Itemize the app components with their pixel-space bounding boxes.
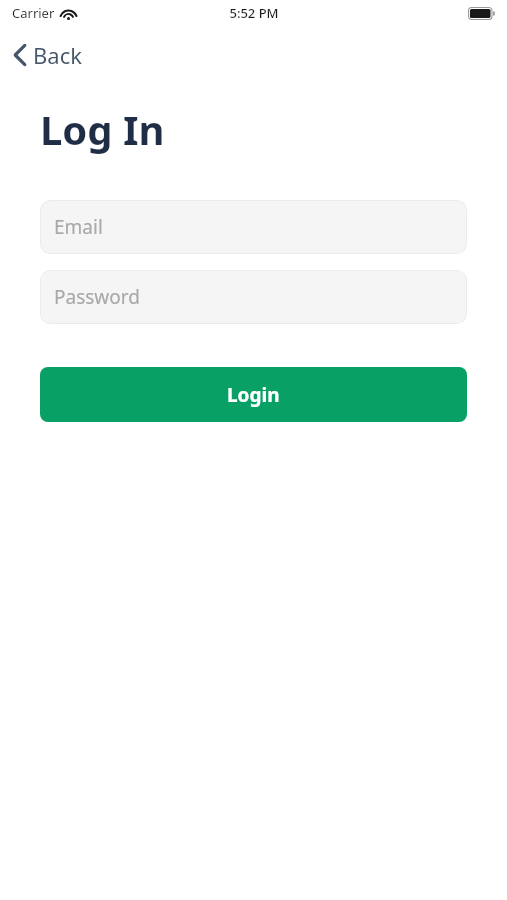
staticText: Login <box>227 382 280 408</box>
staticText: Email <box>54 214 103 240</box>
staticText: Carrier <box>12 4 55 22</box>
button[interactable]: Back <box>10 36 92 74</box>
staticText: Password <box>54 284 140 310</box>
button[interactable]: Password <box>40 270 467 324</box>
button[interactable]: Login <box>40 367 467 422</box>
staticText: Log In <box>40 102 165 156</box>
staticText: 5:52 PM <box>229 4 279 22</box>
button[interactable]: Email <box>40 200 467 254</box>
staticText: Back <box>33 40 82 70</box>
other: Back <box>12 43 28 67</box>
